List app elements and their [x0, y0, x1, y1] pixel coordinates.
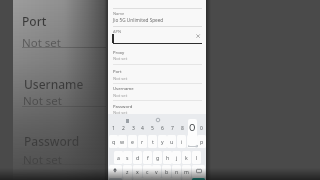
staticText: 8	[181, 125, 184, 132]
staticText: n	[175, 168, 179, 175]
staticText: k	[185, 154, 188, 161]
staticText: 4	[141, 125, 144, 132]
button[interactable]: k	[182, 151, 191, 164]
staticText: d	[136, 154, 140, 161]
button[interactable]	[109, 178, 122, 180]
button[interactable]: 1	[108, 124, 118, 133]
staticText: Password	[24, 133, 80, 149]
staticText: e	[131, 138, 134, 145]
staticText: Not set	[23, 152, 62, 168]
staticText: c	[146, 168, 149, 175]
button[interactable]: 5	[147, 124, 157, 133]
staticText: 5	[151, 125, 154, 132]
button[interactable]: y	[158, 135, 167, 148]
button[interactable]	[192, 178, 205, 180]
button[interactable]: n	[172, 165, 181, 178]
button[interactable]: c	[143, 165, 152, 178]
button[interactable]: x	[133, 165, 142, 178]
staticText: Username	[24, 76, 84, 92]
staticText: Password	[113, 104, 133, 110]
button[interactable]: 4	[137, 124, 147, 133]
button[interactable]: o	[187, 135, 196, 148]
button[interactable]: i	[177, 135, 186, 148]
staticText: 7	[171, 125, 174, 132]
button[interactable]: h	[163, 151, 172, 164]
staticText: 3	[132, 125, 135, 132]
button[interactable]	[133, 178, 181, 180]
staticText: Name	[113, 11, 125, 16]
button[interactable]: w	[118, 135, 127, 148]
staticText: Not set	[113, 56, 128, 62]
button[interactable]: 6	[157, 124, 167, 133]
button[interactable]: 7	[167, 124, 177, 133]
button[interactable]: z	[123, 165, 132, 178]
button[interactable]: v	[152, 165, 161, 178]
staticText: i	[181, 138, 183, 145]
button[interactable]	[108, 49, 206, 62]
staticText: x	[136, 168, 139, 175]
staticText: f	[147, 154, 149, 161]
button[interactable]: p	[197, 135, 206, 148]
staticText: 6	[161, 125, 164, 132]
button[interactable]: b	[162, 165, 171, 178]
button[interactable]: g	[153, 151, 162, 164]
button[interactable]	[108, 103, 206, 116]
button[interactable]: s	[123, 151, 132, 164]
button[interactable]	[192, 165, 205, 178]
staticText: y	[161, 138, 164, 145]
staticText: v	[155, 168, 158, 175]
button[interactable]: j	[172, 151, 181, 164]
button[interactable]: 8	[177, 124, 187, 133]
staticText: Port	[22, 13, 47, 29]
button[interactable]	[182, 178, 191, 180]
staticText: Not set	[23, 93, 62, 109]
staticText: Not set	[113, 110, 128, 116]
button[interactable]: 0	[196, 124, 206, 133]
staticText: O	[189, 122, 196, 133]
button[interactable]: q	[109, 135, 118, 148]
staticText: a	[117, 154, 120, 161]
staticText: s	[126, 154, 129, 161]
staticText: 1	[112, 125, 115, 132]
staticText: g	[156, 154, 160, 161]
staticText: q	[112, 138, 116, 145]
button[interactable]: u	[167, 135, 176, 148]
button[interactable]: r	[138, 135, 147, 148]
button[interactable]: t	[148, 135, 157, 148]
staticText: b	[165, 168, 169, 175]
button[interactable]: 3	[128, 124, 138, 133]
staticText: Not set	[113, 76, 128, 82]
staticText: Username	[113, 86, 134, 92]
button[interactable]: a	[114, 151, 123, 164]
button[interactable]	[123, 178, 132, 180]
staticText: t	[152, 138, 154, 145]
button[interactable]: m	[182, 165, 191, 178]
button[interactable]	[196, 34, 200, 38]
staticText: Not set	[22, 35, 61, 51]
button[interactable]	[108, 9, 206, 26]
staticText: 9	[190, 125, 193, 132]
button[interactable]	[108, 69, 206, 82]
button[interactable]: e	[128, 135, 137, 148]
button[interactable]: 9	[186, 124, 196, 133]
staticText: m	[184, 168, 189, 175]
staticText: h	[166, 154, 170, 161]
staticText: p	[200, 138, 204, 145]
staticText: z	[126, 168, 129, 175]
staticText: 2	[122, 125, 125, 132]
staticText: Proxy	[113, 50, 125, 56]
staticText: Not set	[113, 93, 128, 99]
staticText: Jio 5G Unlimited Speed	[113, 17, 164, 23]
button[interactable]: d	[133, 151, 142, 164]
staticText: u	[170, 138, 174, 145]
button[interactable]: 2	[118, 124, 128, 133]
button[interactable]: l	[192, 151, 201, 164]
staticText: APN	[113, 29, 122, 34]
button[interactable]	[109, 165, 122, 178]
staticText: w	[120, 138, 125, 145]
button[interactable]: f	[143, 151, 152, 164]
staticText: 0	[200, 125, 203, 132]
button[interactable]	[108, 86, 206, 99]
staticText: l	[196, 154, 198, 161]
